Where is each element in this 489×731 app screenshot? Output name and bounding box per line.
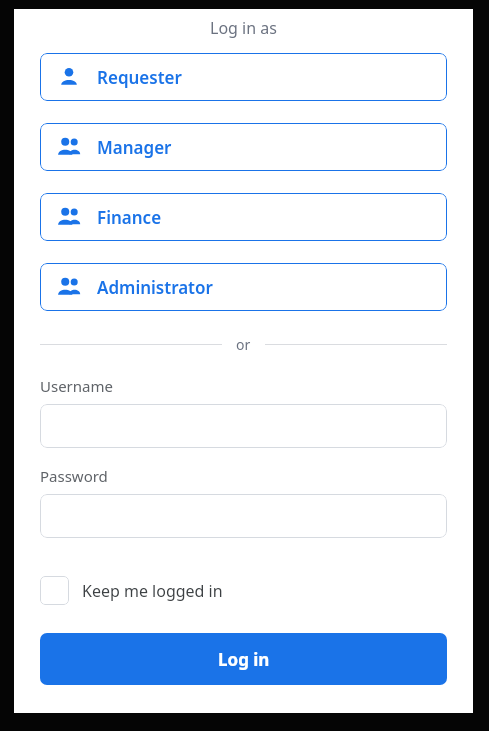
button[interactable]: Log in [40,633,447,685]
button[interactable]: Administrator [40,263,447,311]
button[interactable] [40,494,447,538]
button[interactable]: Manager [40,123,447,171]
button[interactable] [40,404,447,448]
staticText: Keep me logged in [82,580,223,602]
staticText: Administrator [97,276,213,299]
button[interactable]: Finance [40,193,447,241]
staticText: Log in as [14,17,473,39]
button[interactable]: Requester [40,53,447,101]
staticText: Requester [97,66,182,89]
button[interactable]: Keep me logged in [40,576,223,605]
staticText: Username [40,376,113,396]
staticText: Finance [97,206,162,229]
staticText: Password [40,466,108,486]
staticText: Log in [218,648,270,671]
staticText: Manager [97,136,172,159]
staticText: or [236,335,251,354]
